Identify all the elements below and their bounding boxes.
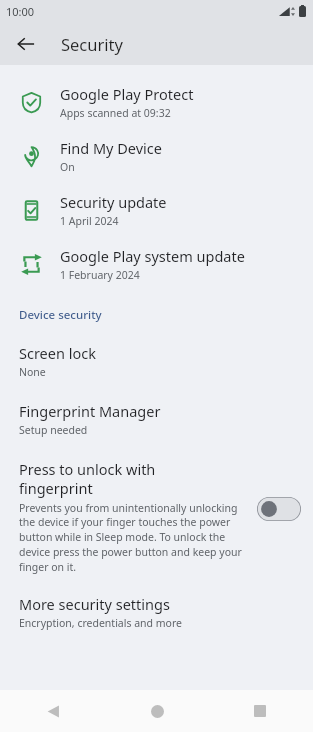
staticText: Google Play Protect [60, 84, 194, 104]
button[interactable]: Back [36, 694, 70, 728]
button[interactable]: Home [140, 694, 174, 728]
staticText: More security settings [19, 594, 170, 614]
button[interactable]: More security settings [0, 590, 313, 634]
staticText: Setup needed [19, 423, 88, 437]
button[interactable]: Google Play Protect [0, 75, 313, 129]
staticText: Security [61, 33, 123, 55]
staticText: Fingerprint Manager [19, 401, 161, 421]
staticText: Device security [19, 307, 102, 323]
button[interactable]: Find My Device [0, 129, 313, 183]
staticText: Press to unlock with fingerprint [19, 459, 179, 498]
staticText: Screen lock [19, 343, 96, 363]
staticText: Find My Device [60, 138, 162, 158]
button[interactable]: Recent apps [243, 694, 277, 728]
button[interactable]: Press to unlock with fingerprint toggle [257, 497, 301, 521]
button[interactable]: Back [10, 28, 42, 60]
button[interactable]: Google Play system update [0, 237, 313, 291]
staticText: Google Play system update [60, 246, 245, 266]
staticText: 10:00 [6, 4, 35, 19]
staticText: Encryption, credentials and more [19, 616, 183, 630]
staticText: Prevents you from unintentionally unlock… [19, 501, 247, 574]
staticText: None [19, 365, 46, 379]
button[interactable]: Security update [0, 183, 313, 237]
staticText: Apps scanned at 09:32 [60, 106, 171, 120]
staticText: 1 February 2024 [60, 268, 140, 282]
staticText: Security update [60, 192, 167, 212]
button[interactable]: Press to unlock with fingerprint [0, 455, 313, 578]
button[interactable]: Screen lock [0, 339, 313, 383]
button[interactable]: Fingerprint Manager [0, 397, 313, 441]
staticText: On [60, 160, 75, 174]
staticText: 1 April 2024 [60, 214, 119, 228]
